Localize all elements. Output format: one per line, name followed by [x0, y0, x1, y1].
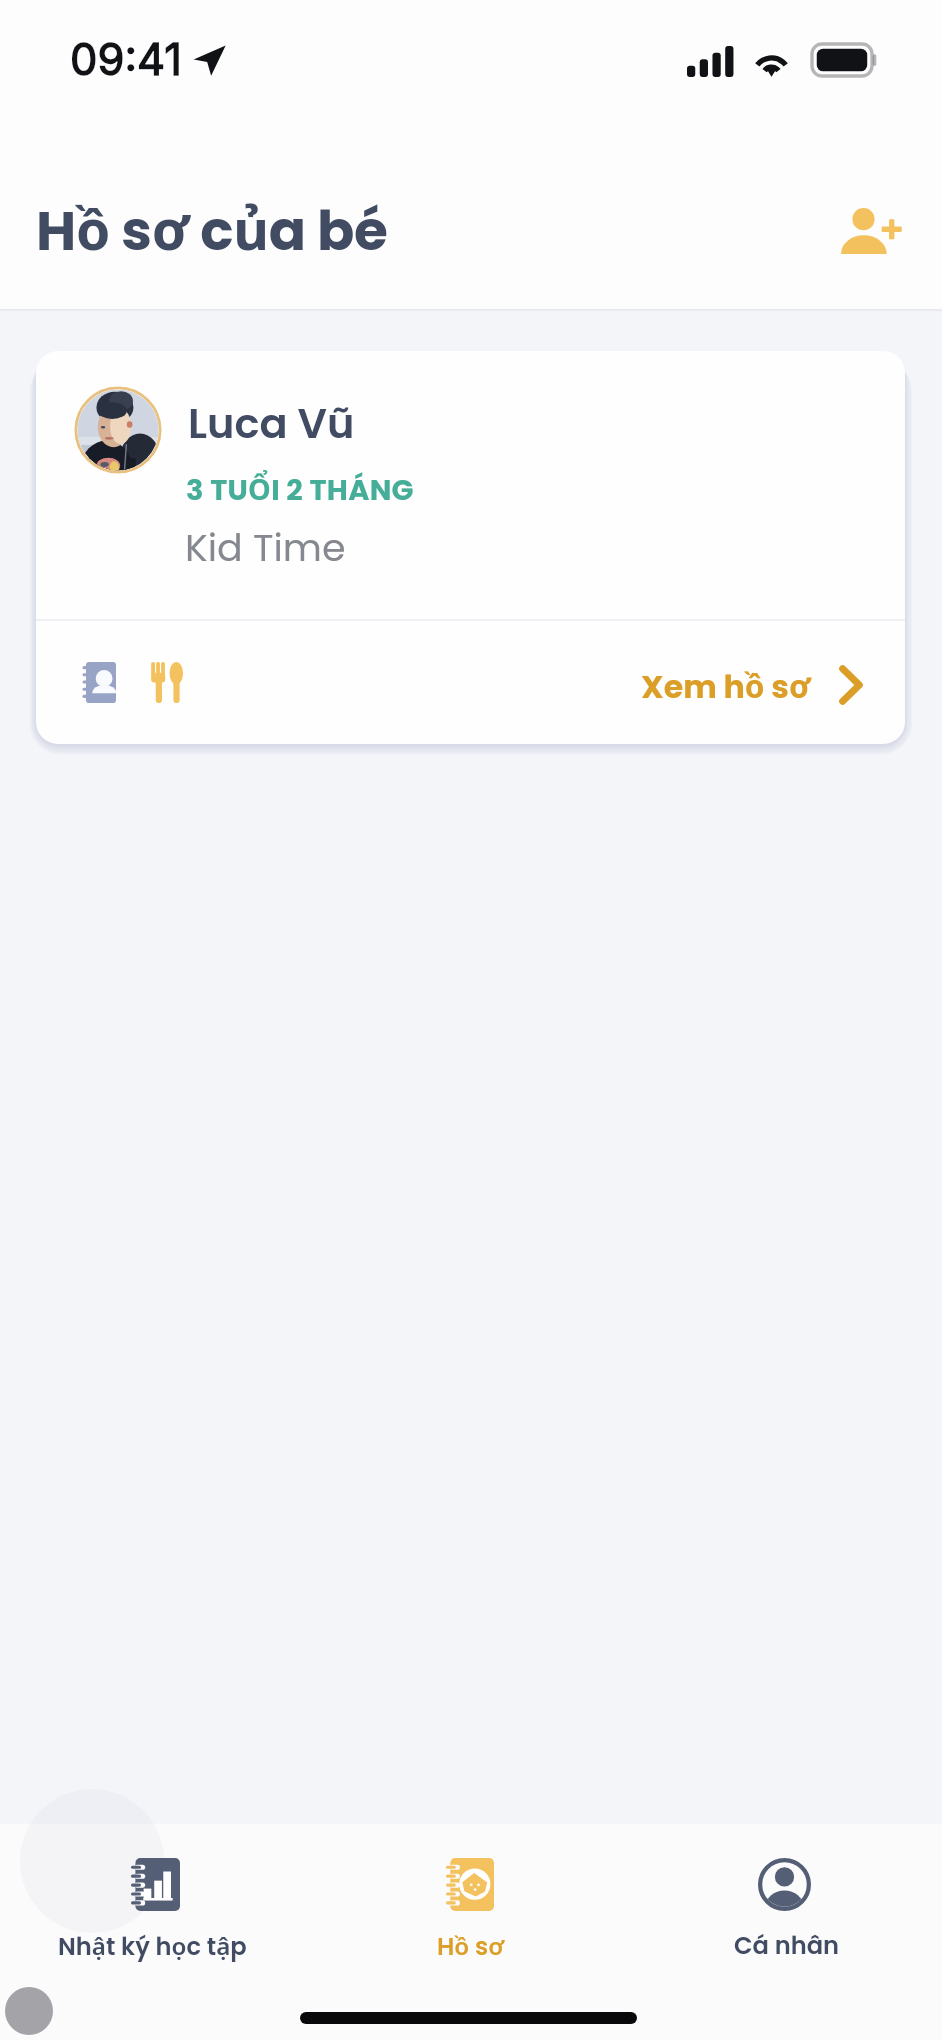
staticText: Hồ sơ — [437, 1929, 505, 1963]
staticText: Kid Time — [185, 521, 346, 574]
button[interactable]: Nhật ký học tập — [20, 1836, 290, 1982]
staticText: Xem hồ sơ — [641, 664, 811, 709]
staticText: 09:41 — [70, 33, 182, 86]
button[interactable]: Luca Vũ — [36, 351, 905, 744]
button[interactable]: Thêm hồ sơ bé — [822, 180, 922, 280]
button[interactable]: Xem hồ sơ — [798, 638, 892, 732]
staticText: 3 TUỔI 2 THÁNG — [186, 469, 414, 510]
staticText: Hồ sơ của bé — [36, 191, 388, 269]
staticText: Nhật ký học tập — [58, 1929, 247, 1963]
button[interactable]: Cá nhân — [664, 1836, 904, 1982]
button[interactable]: Hồ sơ — [350, 1836, 592, 1982]
staticText: Luca Vũ — [188, 394, 355, 452]
staticText: Cá nhân — [734, 1929, 840, 1963]
